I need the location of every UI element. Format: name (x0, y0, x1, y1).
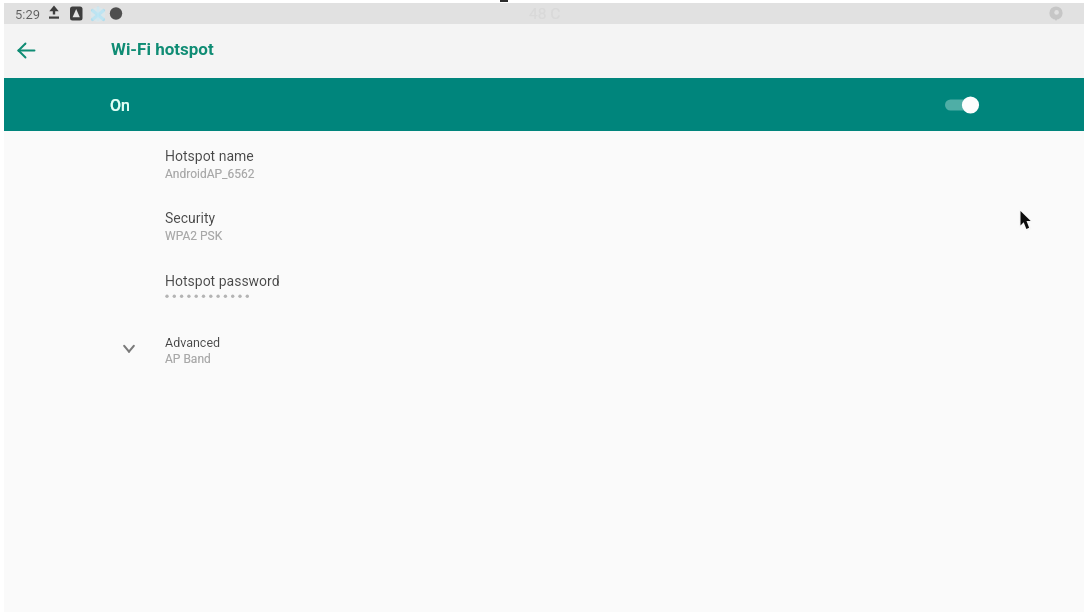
staticText: 5:29 (15, 7, 41, 22)
staticText: Advanced (165, 335, 221, 350)
button[interactable]: Hotspot name (4, 131, 1084, 193)
staticText: Hotspot password (165, 273, 280, 289)
button[interactable]: Security (4, 193, 1084, 255)
staticText: Security (165, 210, 216, 226)
staticText: AP Band (165, 352, 211, 366)
staticText: Wi-Fi hotspot (111, 39, 214, 59)
other: Hotspot toggle (936, 88, 984, 122)
staticText: On (110, 96, 130, 115)
button[interactable]: Hotspot password (4, 256, 1084, 318)
staticText: Hotspot name (165, 148, 254, 164)
button[interactable]: Back (6, 30, 46, 70)
button[interactable]: Advanced (4, 318, 1084, 380)
button[interactable]: On (4, 78, 1084, 131)
staticText: AndroidAP_6562 (165, 167, 255, 181)
staticText: WPA2 PSK (165, 229, 223, 243)
